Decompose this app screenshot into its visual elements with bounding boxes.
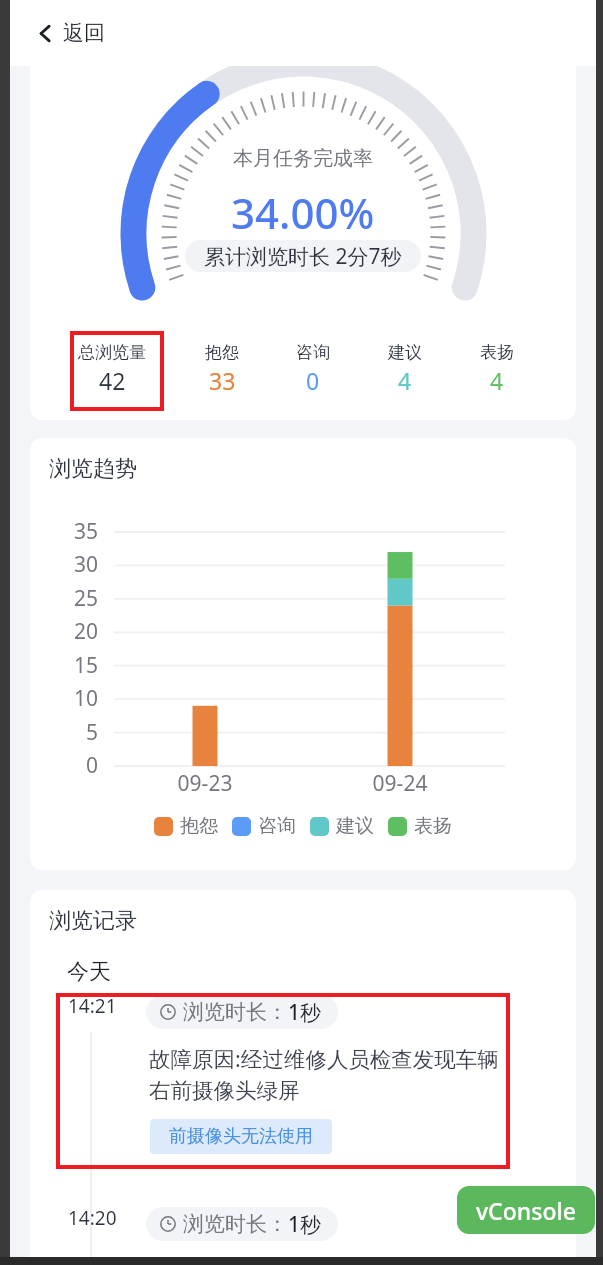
staticText: 累计浏览时长 2分7秒 (204, 242, 402, 271)
staticText: 返回 (63, 20, 105, 46)
staticText: 抱怨 (205, 342, 239, 363)
button[interactable]: vConsole (457, 1186, 595, 1234)
staticText: 15 (58, 651, 98, 680)
staticText: 25 (58, 584, 98, 613)
staticText: 0 (58, 751, 98, 780)
staticText: 抱怨 (180, 814, 218, 838)
staticText: 14:20 (68, 1205, 158, 1231)
staticText: 4 (398, 365, 412, 396)
button[interactable]: 总浏览量 (65, 332, 159, 412)
staticText: 今天 (67, 958, 111, 986)
staticText: 30 (58, 550, 98, 579)
staticText: 10 (58, 684, 98, 713)
staticText: 浏览趋势 (49, 455, 137, 483)
staticText: 本月任务完成率 (233, 146, 373, 171)
staticText: 表扬 (414, 814, 452, 838)
staticText: 09-24 (360, 769, 440, 798)
staticText: 1秒 (288, 1210, 322, 1239)
staticText: 09-23 (165, 769, 245, 798)
staticText: 14:21 (68, 993, 158, 1019)
staticText: 咨询 (258, 814, 296, 838)
staticText: vConsole (476, 1195, 576, 1226)
button[interactable]: 抱怨 (175, 332, 269, 412)
staticText: 浏览记录 (49, 907, 137, 935)
staticText: 总浏览量 (78, 342, 146, 363)
staticText: 4 (490, 365, 504, 396)
button[interactable]: Back (34, 16, 109, 50)
staticText: 35 (58, 517, 98, 546)
button[interactable]: 前摄像头无法使用 (150, 1119, 332, 1154)
button[interactable]: 浏览时长： (146, 995, 338, 1029)
staticText: 故障原因:经过维修人员检查发现车辆右前摄像头绿屏 (149, 1256, 505, 1265)
staticText: 0 (306, 365, 320, 396)
staticText: 浏览时长： (183, 999, 288, 1025)
button[interactable]: 表扬 (450, 332, 544, 412)
staticText: 34.00% (231, 184, 375, 241)
staticText: 33 (209, 365, 236, 396)
staticText: 建议 (336, 814, 374, 838)
staticText: 1秒 (288, 998, 322, 1027)
staticText: 20 (58, 617, 98, 646)
button[interactable]: 咨询 (266, 332, 360, 412)
button[interactable]: 建议 (358, 332, 452, 412)
staticText: 浏览时长： (183, 1211, 288, 1237)
staticText: 前摄像头无法使用 (169, 1125, 313, 1148)
staticText: 表扬 (480, 342, 514, 363)
button[interactable]: 浏览时长： (146, 1207, 338, 1241)
staticText: 5 (58, 718, 98, 747)
staticText: 故障原因:经过维修人员检查发现车辆右前摄像头绿屏 (149, 1044, 505, 1105)
staticText: 咨询 (296, 342, 330, 363)
staticText: 42 (99, 365, 126, 396)
staticText: 建议 (388, 342, 422, 363)
